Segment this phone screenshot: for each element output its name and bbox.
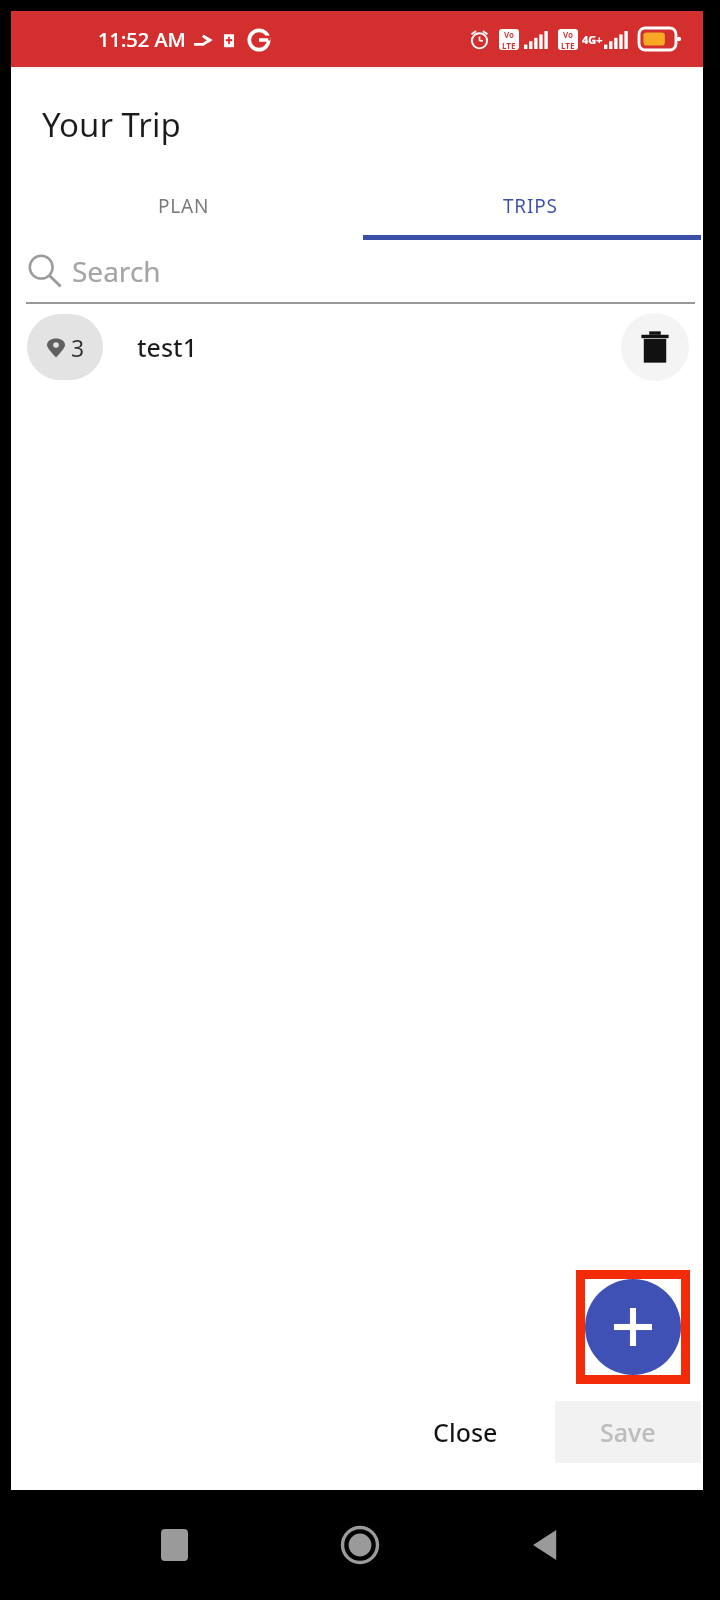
staticText: Vo	[504, 29, 515, 40]
staticText: LTE	[502, 40, 516, 50]
staticText: Close	[433, 1415, 498, 1449]
button[interactable]: Delete trip	[621, 313, 689, 381]
staticText: 3	[71, 332, 85, 363]
staticText: Search	[72, 252, 161, 290]
button[interactable]: 3	[27, 304, 689, 390]
button[interactable]: PLAN	[11, 172, 357, 240]
button[interactable]: Search	[26, 240, 695, 302]
button[interactable]: Save	[555, 1401, 701, 1463]
staticText: LTE	[561, 40, 575, 50]
button[interactable]: TRIPS	[357, 172, 703, 240]
button[interactable]: Home	[336, 1521, 384, 1569]
staticText: test1	[137, 330, 197, 364]
staticText: PLAN	[158, 193, 210, 219]
staticText: TRIPS	[503, 193, 558, 219]
button[interactable]: Back	[522, 1521, 570, 1569]
staticText: 4G+	[582, 32, 603, 47]
staticText: Save	[600, 1415, 656, 1449]
staticText: Your Trip	[42, 102, 181, 147]
button[interactable]: Close	[389, 1401, 541, 1463]
button[interactable]: Add trip	[585, 1279, 681, 1375]
button[interactable]: Recent apps	[150, 1521, 198, 1569]
staticText: Vo	[563, 29, 574, 40]
staticText: 11:52 AM	[98, 26, 186, 53]
